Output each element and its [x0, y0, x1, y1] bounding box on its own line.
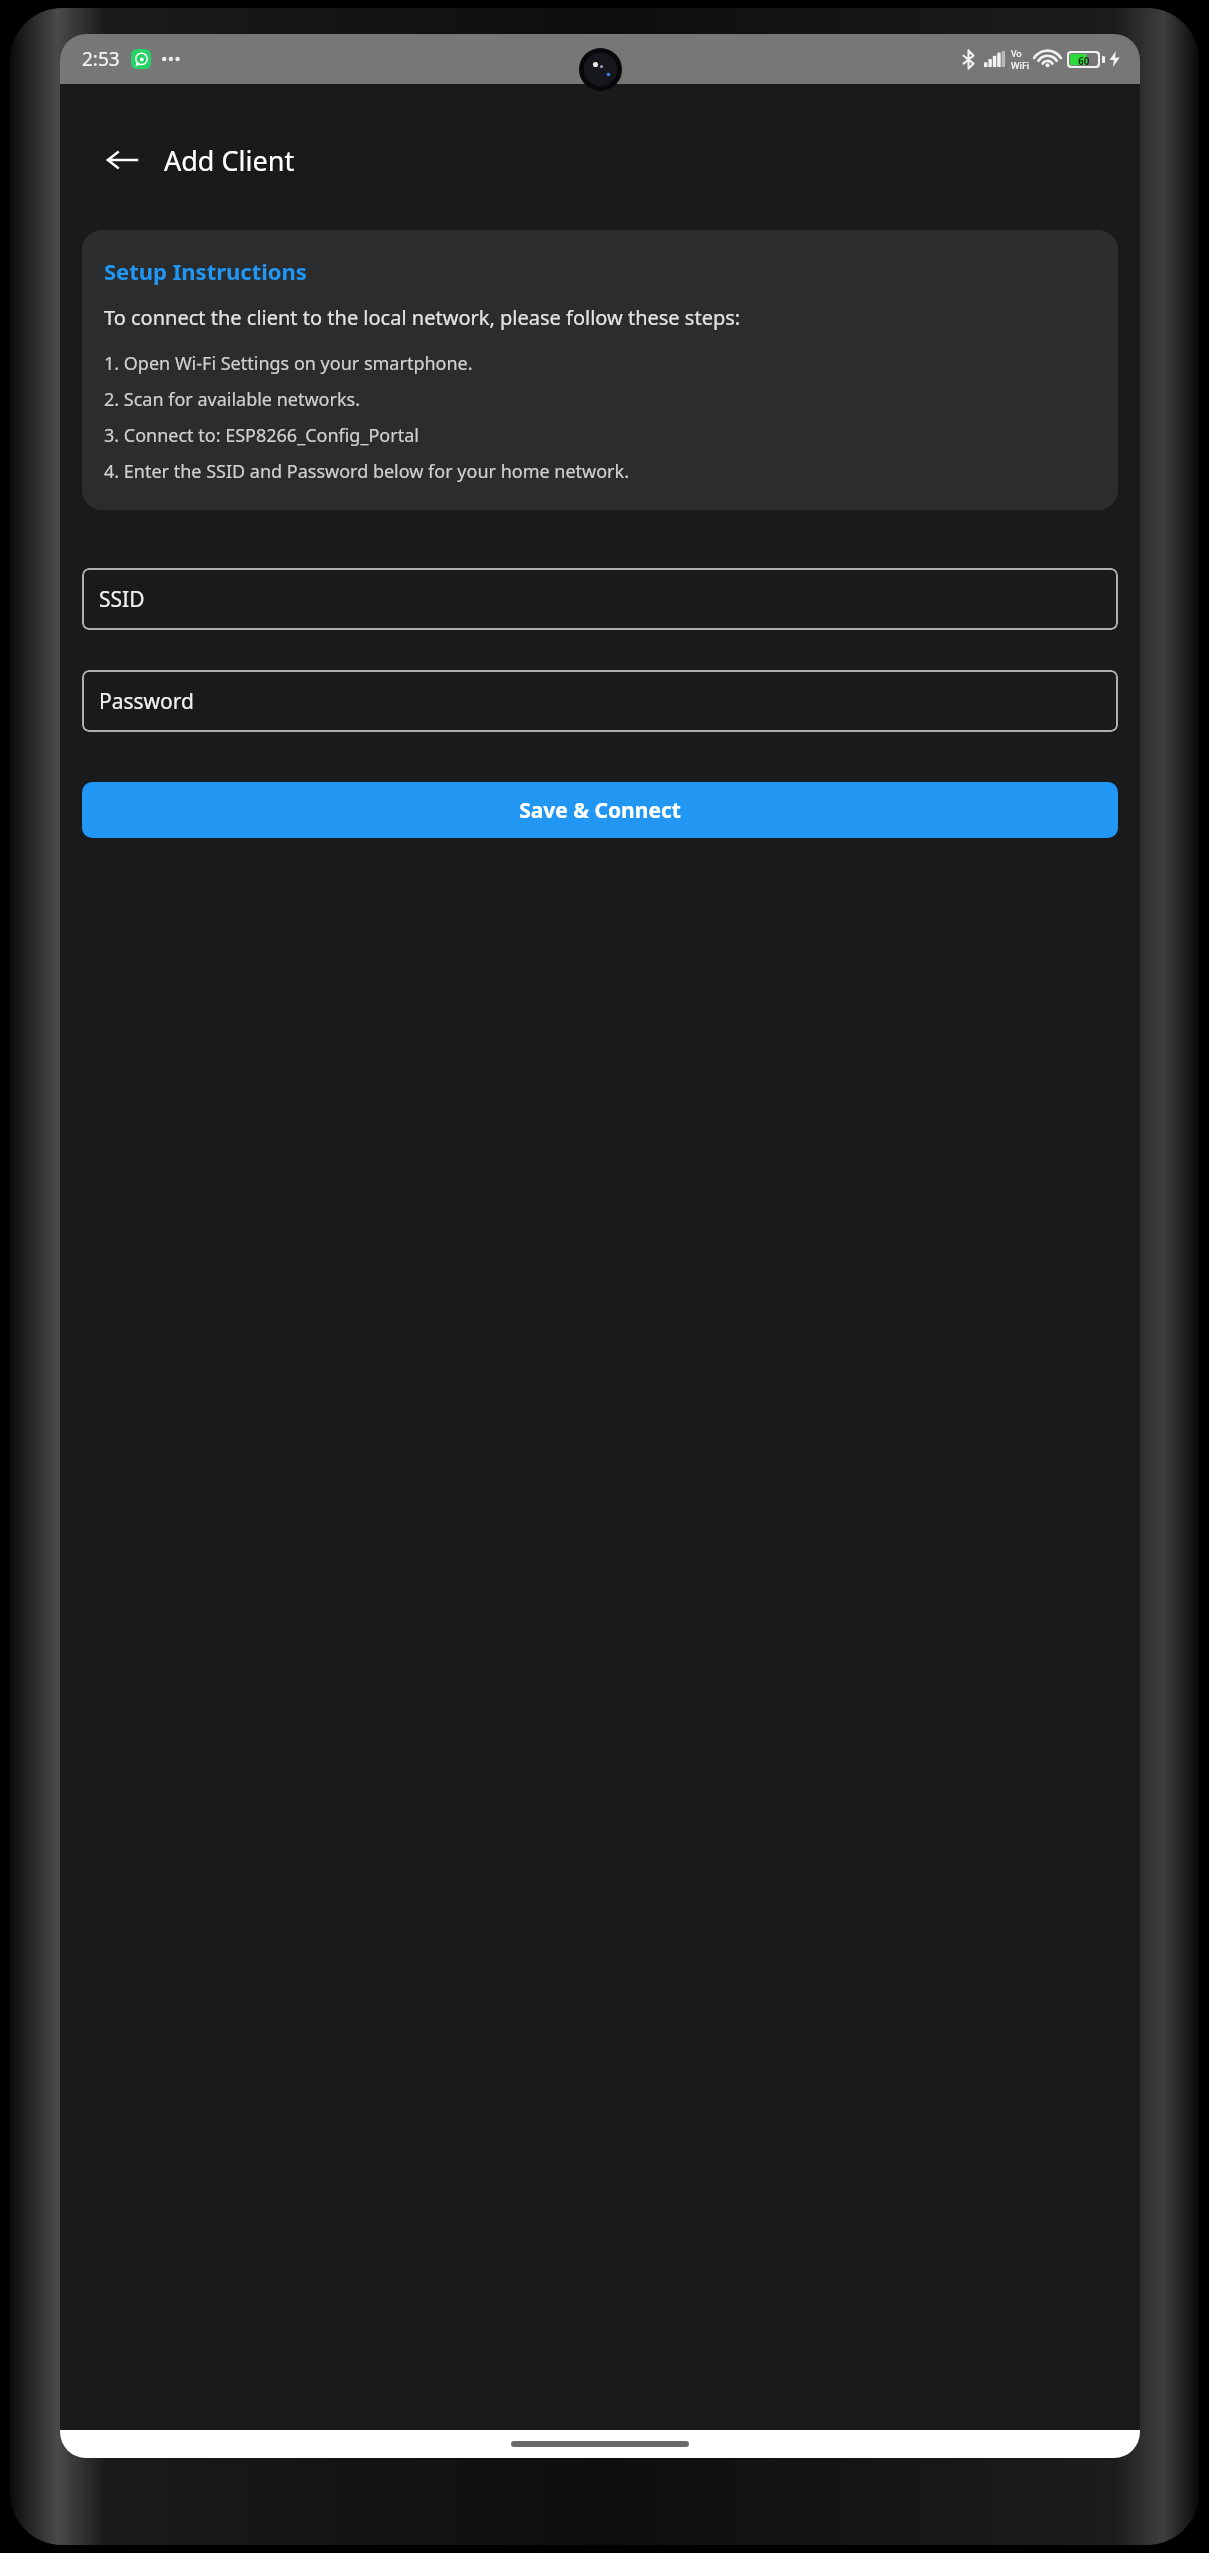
staticText: 60	[1078, 54, 1090, 65]
staticText: Add Client	[164, 142, 295, 179]
staticText: 1. Open Wi-Fi Settings on your smartphon…	[104, 351, 473, 376]
staticText: 2. Scan for available networks.	[104, 387, 360, 412]
staticText: Vo	[1011, 47, 1022, 59]
staticText: To connect the client to the local netwo…	[104, 304, 741, 331]
staticText: 3. Connect to: ESP8266_Config_Portal	[104, 423, 419, 448]
button[interactable]: Password	[82, 670, 1118, 732]
staticText: 2:53	[82, 46, 120, 72]
staticText: 4. Enter the SSID and Password below for…	[104, 459, 629, 484]
button[interactable]: Back	[96, 134, 148, 186]
staticText: Setup Instructions	[104, 256, 307, 286]
staticText: SSID	[99, 585, 145, 614]
button[interactable]: SSID	[82, 568, 1118, 630]
staticText: Save & Connect	[519, 796, 681, 825]
staticText: Password	[99, 687, 194, 716]
staticText: WiFi	[1011, 59, 1030, 71]
button[interactable]: Save & Connect	[82, 782, 1118, 838]
